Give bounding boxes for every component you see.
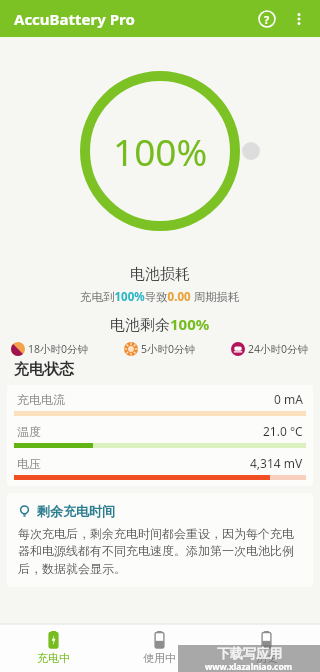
staticText: 使用中 <box>143 651 176 665</box>
staticText: www.xlazalniao.com <box>205 661 293 672</box>
button[interactable]: 充电电流 <box>14 391 306 416</box>
staticText: 每次充电后，剩余充电时间都会重设，因为每个充电器和电源线都有不同充电速度。添加第… <box>18 526 302 577</box>
staticText: 24小时0分钟 <box>248 342 309 356</box>
staticText: 电池剩余100% <box>110 314 210 334</box>
staticText: ? <box>264 12 270 27</box>
staticText: 电压 <box>17 456 41 471</box>
staticText: 充电中 <box>37 651 70 665</box>
staticText: 充电状态 <box>14 360 74 379</box>
staticText: 21.0 °C <box>263 423 303 439</box>
staticText: 100% <box>113 126 208 176</box>
staticText: 电池损耗 <box>130 265 190 284</box>
button[interactable]: 18小时0分钟 <box>11 342 89 356</box>
button[interactable]: 充电中 <box>0 624 106 672</box>
button[interactable]: 电压 <box>14 455 306 480</box>
button[interactable]: 剩余充电时间 <box>7 493 313 587</box>
staticText: 0 mA <box>274 391 303 407</box>
staticText: 温度 <box>17 424 41 439</box>
staticText: 下载写应用 <box>217 645 282 661</box>
button[interactable]: 24小时0分钟 <box>231 342 309 356</box>
button[interactable]: 5小时0分钟 <box>124 342 196 356</box>
button[interactable]: Help <box>250 2 284 36</box>
staticText: 4,314 mV <box>250 455 303 471</box>
staticText: AccuBattery Pro <box>14 9 135 29</box>
button[interactable]: 历史 <box>213 624 320 672</box>
staticText: 充电到100%导致0.00 周期损耗 <box>80 289 240 305</box>
button[interactable]: 使用中 <box>106 624 213 672</box>
staticText: 充电电流 <box>17 392 65 407</box>
staticText: 18小时0分钟 <box>28 342 89 356</box>
staticText: 历史 <box>256 651 278 665</box>
staticText: 剩余充电时间 <box>37 503 115 519</box>
staticText: 5小时0分钟 <box>141 342 196 356</box>
button[interactable]: More options <box>284 4 314 34</box>
button[interactable]: 温度 <box>14 423 306 448</box>
